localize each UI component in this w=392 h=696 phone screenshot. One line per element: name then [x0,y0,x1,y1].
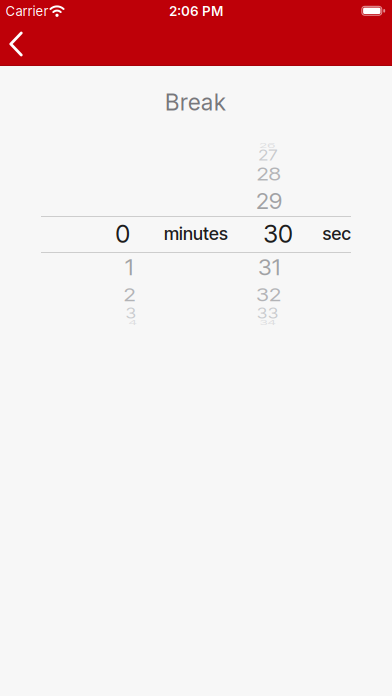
staticText: sec [322,223,350,244]
staticText: 30 [263,219,292,249]
staticText: 1 [125,253,133,281]
staticText: 3 [125,303,136,324]
staticText: 2 [123,282,135,308]
staticText: 32 [256,282,281,308]
staticText: 27 [258,145,277,166]
staticText: 28 [256,161,280,187]
staticText: 31 [258,253,280,281]
staticText: Carrier [5,3,48,19]
staticText: 2:06 PM [169,3,223,19]
staticText: 34 [259,314,275,331]
button[interactable]: Back [6,27,31,61]
staticText: 4 [128,314,136,331]
staticText: Break [165,89,226,116]
staticText: 26 [259,137,275,154]
staticText: 33 [257,303,279,324]
staticText: 0 [116,219,130,249]
staticText: minutes [164,223,228,244]
staticText: 29 [256,187,282,215]
